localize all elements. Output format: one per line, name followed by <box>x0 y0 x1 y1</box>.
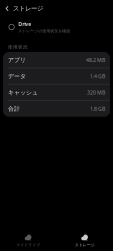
button[interactable]: マイドライブ <box>0 226 56 251</box>
staticText: 1.4 GB <box>90 73 105 80</box>
button[interactable]: ストレージ <box>0 2 47 14</box>
staticText: 320 MB <box>87 89 105 96</box>
staticText: 48.2 MB <box>86 57 105 64</box>
staticText: マイドライブ <box>16 243 40 247</box>
staticText: データ <box>8 73 26 80</box>
button[interactable]: 合計 <box>3 101 110 117</box>
staticText: 使用状況 <box>8 44 28 50</box>
staticText: ストレージの使用状況を確認 <box>18 29 70 33</box>
staticText: 合計 <box>8 105 20 112</box>
button[interactable]: アプリ <box>3 52 110 68</box>
staticText: 1.8 GB <box>90 105 105 112</box>
staticText: Drive <box>18 20 31 28</box>
button[interactable]: ストレージ <box>56 226 113 251</box>
button[interactable]: キャッシュ <box>3 84 110 101</box>
staticText: キャッシュ <box>8 89 38 96</box>
button[interactable]: データ <box>3 68 110 84</box>
staticText: ストレージ <box>13 5 43 12</box>
staticText: ストレージ <box>75 243 95 247</box>
staticText: アプリ <box>8 56 26 64</box>
